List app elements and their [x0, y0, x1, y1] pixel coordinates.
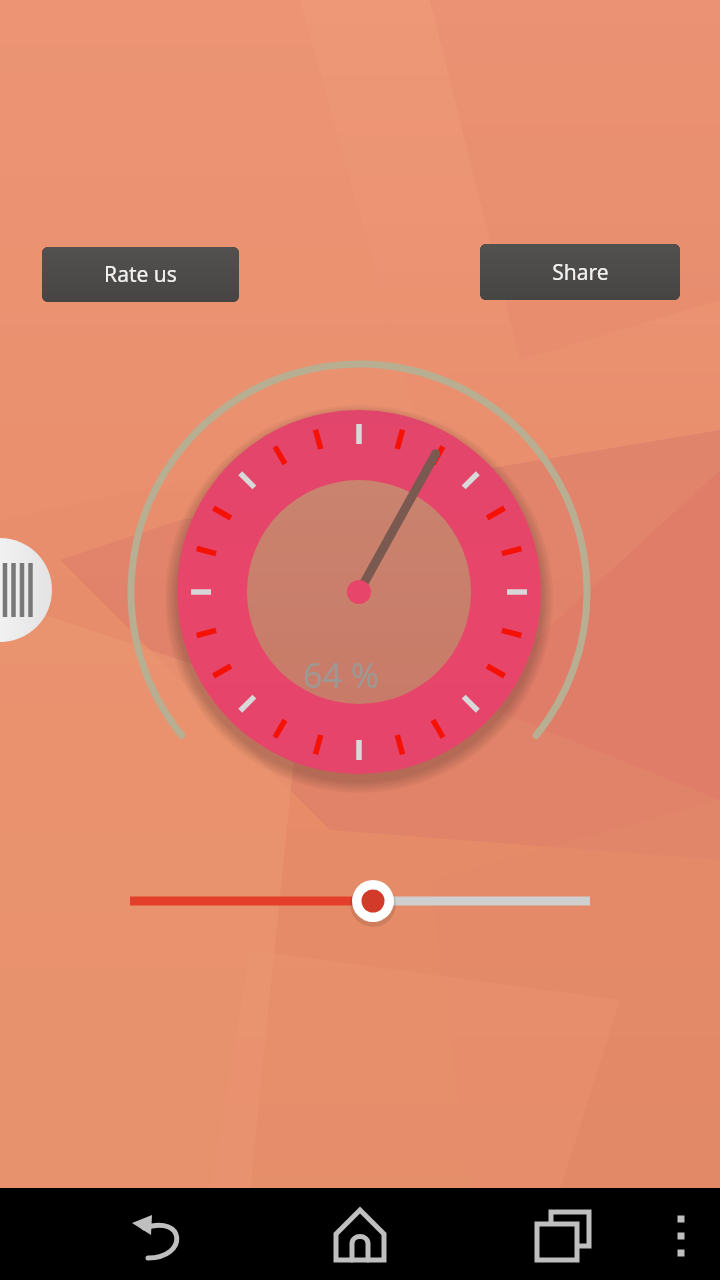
staticText: Rate us [104, 260, 177, 289]
button[interactable]: More options [645, 1188, 717, 1280]
button[interactable]: Open drawer [0, 538, 40, 642]
button[interactable]: Back [112, 1188, 212, 1280]
button[interactable]: Recent apps [509, 1188, 609, 1280]
button[interactable]: Gauge 64 percent [177, 410, 541, 774]
button[interactable]: Rate us [42, 247, 239, 302]
button[interactable]: Brightness slider [130, 872, 590, 930]
staticText: 64 % [303, 652, 379, 698]
button[interactable]: Share [480, 244, 680, 300]
staticText: Share [552, 258, 609, 287]
button[interactable]: Home [310, 1188, 410, 1280]
